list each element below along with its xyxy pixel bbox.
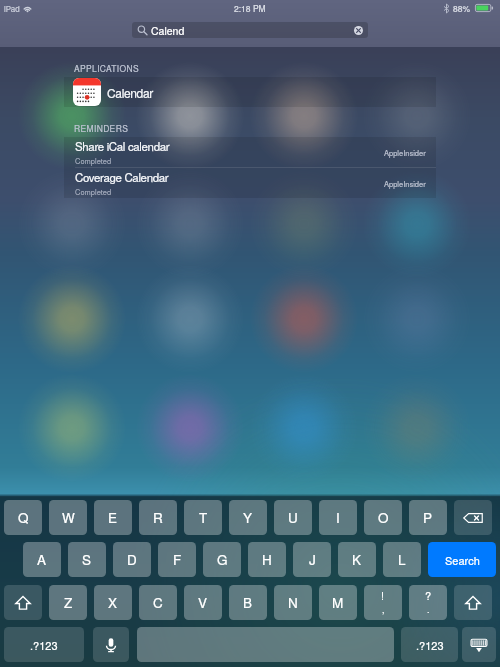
button[interactable]: Backspace <box>454 500 492 535</box>
button[interactable]: N <box>274 585 312 620</box>
staticText: APPLICATIONS <box>74 62 140 74</box>
staticText: Completed <box>75 155 112 166</box>
staticText: I <box>336 508 340 527</box>
staticText: V <box>198 593 208 612</box>
button[interactable]: Hide keyboard <box>462 627 496 662</box>
staticText: Coverage Calendar <box>75 169 169 185</box>
staticText: 2:18 PM <box>234 2 266 14</box>
staticText: N <box>288 593 298 612</box>
staticText: B <box>243 593 253 612</box>
button[interactable]: A <box>23 542 61 577</box>
button[interactable]: O <box>364 500 402 535</box>
staticText: S <box>82 550 92 569</box>
button[interactable]: D <box>113 542 151 577</box>
button[interactable]: R <box>139 500 177 535</box>
button[interactable]: ? <box>409 585 447 620</box>
button[interactable]: P <box>409 500 447 535</box>
button[interactable]: H <box>248 542 286 577</box>
staticText: Calend <box>151 23 185 38</box>
button[interactable]: Shift <box>454 585 492 620</box>
button[interactable]: I <box>319 500 357 535</box>
button[interactable]: S <box>68 542 106 577</box>
button[interactable]: Shift <box>4 585 42 620</box>
button[interactable]: Calend <box>132 22 368 38</box>
button[interactable]: F <box>158 542 196 577</box>
button[interactable]: U <box>274 500 312 535</box>
staticText: REMINDERS <box>74 122 129 134</box>
staticText: Z <box>64 593 73 612</box>
button[interactable]: W <box>49 500 87 535</box>
staticText: .?123 <box>30 637 58 653</box>
staticText: D <box>127 550 137 569</box>
staticText: E <box>108 508 118 527</box>
button[interactable]: Coverage Calendar <box>64 168 436 198</box>
staticText: F <box>173 550 182 569</box>
staticText: Search <box>445 552 480 568</box>
button[interactable]: Calendar <box>64 77 436 107</box>
staticText: . <box>427 603 430 616</box>
staticText: ? <box>425 587 432 603</box>
staticText: M <box>332 593 344 612</box>
button[interactable]: C <box>139 585 177 620</box>
staticText: O <box>378 508 389 527</box>
staticText: Calendar <box>107 84 153 101</box>
staticText: ! <box>381 587 385 603</box>
staticText: G <box>217 550 228 569</box>
staticText: P <box>423 508 433 527</box>
staticText: 88% <box>453 2 471 14</box>
button[interactable]: .?123 <box>401 627 458 662</box>
button[interactable]: .?123 <box>4 627 84 662</box>
staticText: iPad <box>4 3 20 14</box>
staticText: Share iCal calendar <box>75 138 170 154</box>
staticText: Q <box>18 508 29 527</box>
button[interactable]: M <box>319 585 357 620</box>
button[interactable]: Search <box>428 542 496 577</box>
button[interactable]: V <box>184 585 222 620</box>
button[interactable]: Y <box>229 500 267 535</box>
staticText: K <box>352 550 362 569</box>
staticText: A <box>37 550 47 569</box>
staticText: Completed <box>75 186 112 197</box>
button[interactable]: Q <box>4 500 42 535</box>
staticText: U <box>288 508 298 527</box>
staticText: AppleInsider <box>384 178 426 189</box>
button[interactable]: L <box>383 542 421 577</box>
staticText: R <box>153 508 163 527</box>
staticText: , <box>382 603 385 616</box>
staticText: T <box>199 508 208 527</box>
button[interactable]: Clear search <box>354 26 363 35</box>
button[interactable]: G <box>203 542 241 577</box>
button[interactable]: Dictation <box>93 627 129 662</box>
button[interactable]: E <box>94 500 132 535</box>
button[interactable]: B <box>229 585 267 620</box>
staticText: W <box>62 508 75 527</box>
button[interactable]: T <box>184 500 222 535</box>
staticText: C <box>153 593 163 612</box>
staticText: AppleInsider <box>384 147 426 158</box>
staticText: H <box>262 550 272 569</box>
staticText: Y <box>243 508 253 527</box>
button[interactable]: X <box>94 585 132 620</box>
staticText: J <box>309 550 316 569</box>
button[interactable]: ! <box>364 585 402 620</box>
button[interactable]: K <box>338 542 376 577</box>
button[interactable]: J <box>293 542 331 577</box>
button[interactable]: Share iCal calendar <box>64 137 436 167</box>
staticText: X <box>108 593 118 612</box>
button[interactable]: Space <box>137 627 394 662</box>
button[interactable]: Z <box>49 585 87 620</box>
staticText: .?123 <box>416 637 444 653</box>
staticText: L <box>398 550 406 569</box>
